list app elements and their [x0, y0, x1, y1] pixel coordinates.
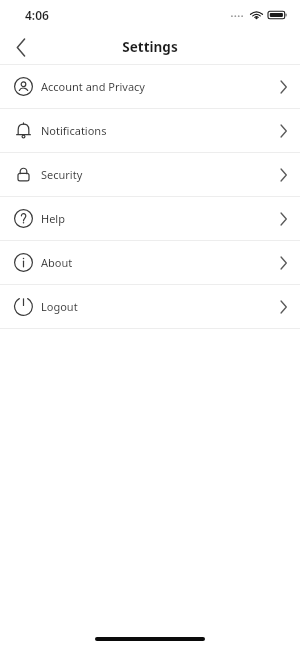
button[interactable]: Account and Privacy — [0, 65, 300, 108]
staticText: Security — [41, 167, 280, 182]
staticText: 4:06 — [25, 7, 49, 23]
button[interactable]: About — [0, 241, 300, 284]
staticText: About — [41, 255, 280, 270]
button[interactable]: Back — [0, 30, 42, 64]
staticText: Settings — [0, 38, 300, 56]
staticText: Help — [41, 211, 280, 226]
staticText: Notifications — [41, 123, 280, 138]
button[interactable]: Logout — [0, 285, 300, 328]
staticText: Logout — [41, 299, 280, 314]
button[interactable]: Notifications — [0, 109, 300, 152]
staticText: Account and Privacy — [41, 79, 280, 94]
button[interactable]: Security — [0, 153, 300, 196]
button[interactable]: Help — [0, 197, 300, 240]
